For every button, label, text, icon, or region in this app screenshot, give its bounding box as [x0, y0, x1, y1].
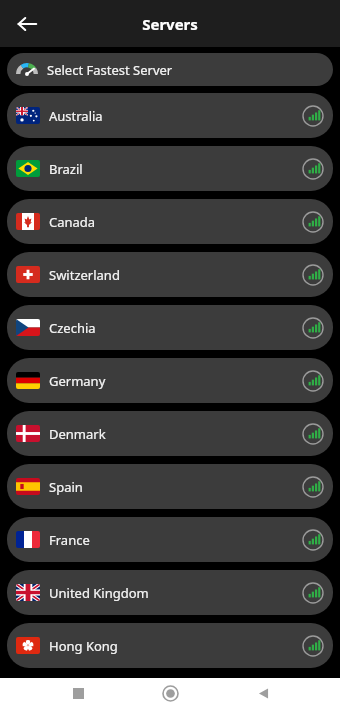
staticText: Hong Kong: [49, 637, 118, 655]
button[interactable]: Czechia: [7, 305, 333, 350]
button[interactable]: Denmark: [7, 411, 333, 456]
staticText: Brazil: [49, 160, 83, 178]
staticText: Denmark: [49, 425, 106, 443]
staticText: Germany: [49, 372, 106, 390]
button[interactable]: Hong Kong: [7, 623, 333, 668]
button[interactable]: United Kingdom: [7, 570, 333, 615]
staticText: United Kingdom: [49, 584, 149, 602]
staticText: Servers: [142, 14, 198, 34]
button[interactable]: Spain: [7, 464, 333, 509]
other: Back: [16, 13, 38, 35]
staticText: Select Fastest Server: [47, 61, 173, 79]
button[interactable]: Australia: [7, 93, 333, 138]
staticText: Canada: [49, 213, 96, 231]
button[interactable]: Brazil: [7, 146, 333, 191]
button[interactable]: Recent apps: [63, 678, 93, 708]
button[interactable]: Switzerland: [7, 252, 333, 297]
staticText: France: [49, 531, 90, 549]
staticText: Czechia: [49, 319, 96, 337]
staticText: Australia: [49, 107, 103, 125]
button[interactable]: Back: [12, 9, 42, 39]
staticText: Switzerland: [49, 266, 120, 284]
button[interactable]: Home: [155, 678, 185, 708]
button[interactable]: Select Fastest Server: [7, 53, 333, 86]
button[interactable]: Germany: [7, 358, 333, 403]
staticText: Spain: [49, 478, 83, 496]
button[interactable]: Canada: [7, 199, 333, 244]
button[interactable]: France: [7, 517, 333, 562]
button[interactable]: Back: [248, 678, 278, 708]
